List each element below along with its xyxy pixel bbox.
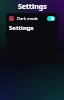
staticText: Settings — [18, 2, 47, 12]
button[interactable]: Dark mode — [6, 13, 58, 24]
staticText: Settings — [9, 24, 34, 32]
staticText: Dark mode — [17, 16, 38, 21]
